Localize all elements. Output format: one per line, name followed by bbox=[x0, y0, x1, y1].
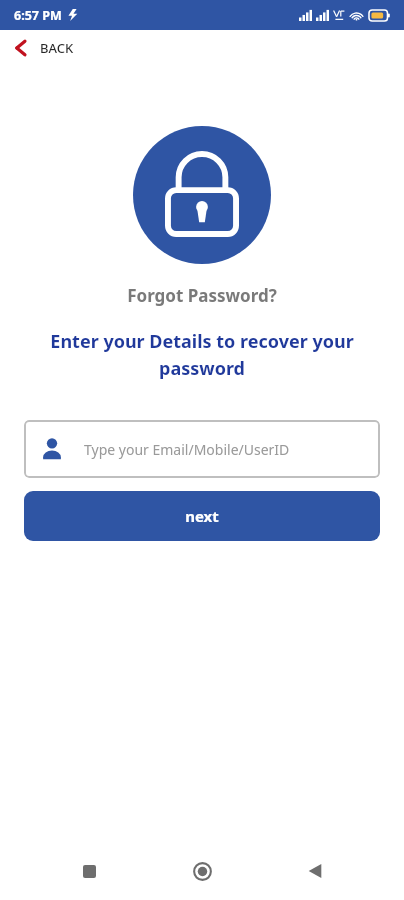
staticText: next bbox=[185, 506, 219, 526]
button[interactable]: next bbox=[24, 491, 380, 541]
button[interactable]: Back bbox=[291, 847, 339, 895]
staticText: Enter your Details to recover your passw… bbox=[34, 329, 370, 380]
staticText: Forgot Password? bbox=[0, 284, 404, 307]
button[interactable]: BACK bbox=[0, 30, 404, 66]
button[interactable]: Recent apps bbox=[65, 847, 113, 895]
staticText: BACK bbox=[40, 39, 74, 57]
button[interactable]: Home bbox=[178, 847, 226, 895]
staticText: 6:57 PM bbox=[14, 7, 62, 24]
staticText: Type your Email/Mobile/UserID bbox=[84, 440, 290, 459]
button[interactable]: Type your Email/Mobile/UserID bbox=[24, 420, 380, 478]
